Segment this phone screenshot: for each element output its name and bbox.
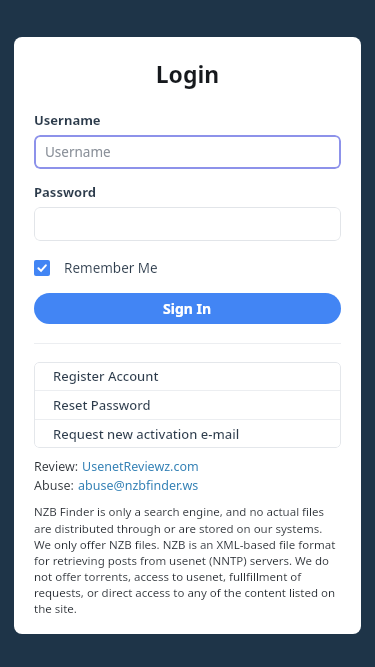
staticText: Sign In (163, 299, 212, 318)
button[interactable]: Username (34, 135, 341, 169)
staticText: Username (45, 143, 111, 161)
staticText: Reset Password (53, 396, 151, 414)
staticText: Review: (34, 458, 82, 475)
button[interactable]: UsenetReviewz.com (82, 458, 199, 475)
button[interactable]: Sign In (34, 293, 341, 324)
staticText: Password (34, 183, 96, 201)
staticText: abuse@nzbfinder.ws (78, 477, 199, 494)
staticText: UsenetReviewz.com (82, 458, 199, 475)
staticText: Remember Me (64, 259, 158, 277)
staticText: Request new activation e-mail (53, 425, 240, 443)
staticText: Abuse: (34, 477, 78, 494)
staticText: Username (34, 111, 101, 129)
button[interactable]: Register Account (34, 362, 341, 390)
staticText: Register Account (53, 367, 159, 385)
staticText: NZB Finder is only a search engine, and … (34, 504, 341, 616)
button[interactable]: Remember Me (34, 257, 158, 279)
button[interactable]: abuse@nzbfinder.ws (78, 477, 199, 494)
button[interactable]: Request new activation e-mail (34, 420, 341, 448)
staticText: Login (34, 58, 341, 89)
button[interactable] (34, 207, 341, 241)
button[interactable]: Reset Password (34, 391, 341, 419)
